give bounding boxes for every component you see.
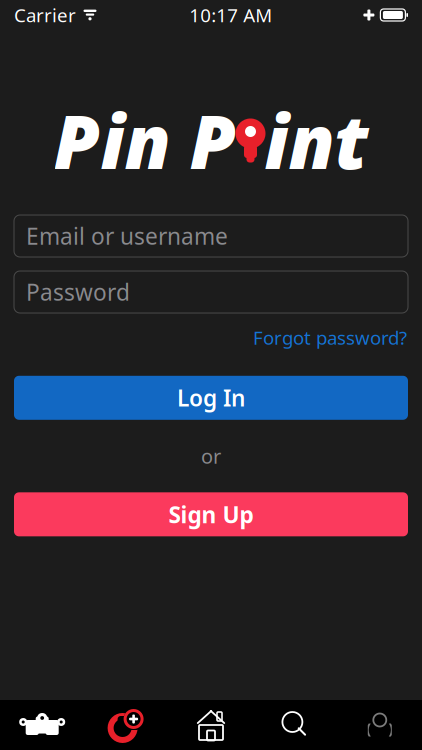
button[interactable]: Forgot password?: [253, 319, 407, 356]
staticText: Password: [26, 277, 130, 307]
staticText: Forgot password?: [253, 325, 407, 350]
staticText: Log In: [177, 383, 245, 413]
staticText: int: [264, 90, 368, 190]
button[interactable]: Profile: [338, 700, 422, 750]
staticText: 10:17 AM: [189, 3, 272, 27]
staticText: or: [201, 443, 221, 469]
button[interactable]: Search: [253, 700, 338, 750]
staticText: Carrier: [14, 3, 76, 27]
button[interactable]: Sign Up: [14, 492, 408, 536]
staticText: Pin P: [53, 90, 236, 190]
button[interactable]: Log In: [14, 376, 408, 420]
staticText: Email or username: [26, 221, 228, 251]
staticText: Sign Up: [168, 499, 253, 529]
button[interactable]: Map: [0, 700, 84, 750]
button[interactable]: New call: [84, 700, 169, 750]
button[interactable]: Home: [169, 700, 253, 750]
